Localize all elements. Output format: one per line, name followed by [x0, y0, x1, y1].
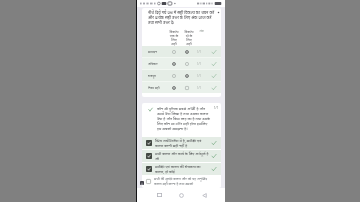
- staticText: अंक: [199, 29, 204, 33]
- staticText: सभी की सुरक्षा कारण और को यह अनुच्छेद का…: [154, 176, 210, 186]
- staticText: सभी कारण और कार्य के लिए अर्थपूर्ण है औ: [155, 151, 209, 161]
- button[interactable]: नियम सही: [142, 82, 221, 93]
- staticText: 1/1: [197, 74, 202, 78]
- button[interactable]: अधिकार: [142, 58, 221, 69]
- button[interactable]: Recents: [153, 189, 165, 201]
- staticText: 1/1: [197, 86, 202, 90]
- button[interactable]: विश्व अर्थव्यवस्था में है, समीक्षा एवं क…: [142, 137, 221, 149]
- staticText: राजपूत: [148, 74, 156, 78]
- button[interactable]: सम्पादन: [142, 46, 221, 57]
- button[interactable]: Back: [198, 189, 210, 201]
- staticText: नियम सही: [148, 86, 160, 90]
- staticText: विकल्प एक के लिए सही: [169, 29, 179, 46]
- button[interactable]: Account: [140, 181, 144, 185]
- button[interactable]: More options: [216, 10, 221, 15]
- staticText: समीक्षा एवं कारण की रोचकता का कारण, हो क…: [155, 164, 209, 174]
- staticText: 1/1: [197, 50, 202, 54]
- button[interactable]: Home: [175, 189, 187, 201]
- button[interactable]: राजपूत: [142, 70, 221, 81]
- staticText: नीचे दिये गये प्रश्न में सही विकल्प का च…: [148, 10, 216, 25]
- staticText: 1/1: [214, 106, 219, 110]
- button[interactable]: सभी की सुरक्षा कारण और को यह अनुच्छेद का…: [142, 175, 221, 187]
- button[interactable]: सभी कारण और कार्य के लिए अर्थपूर्ण है औ: [142, 150, 221, 162]
- staticText: विकल्प दो के लिए सही: [184, 29, 194, 46]
- staticText: सम्पादन: [148, 50, 157, 54]
- staticText: अधिकार: [148, 62, 158, 66]
- staticText: कौन सी पुस्तक सबसे अच्छी है और उसमें क्य…: [157, 106, 212, 131]
- button[interactable]: समीक्षा एवं कारण की रोचकता का कारण, हो क…: [142, 163, 221, 175]
- staticText: 1/1: [197, 62, 202, 66]
- staticText: विश्व अर्थव्यवस्था में है, समीक्षा एवं क…: [155, 138, 209, 148]
